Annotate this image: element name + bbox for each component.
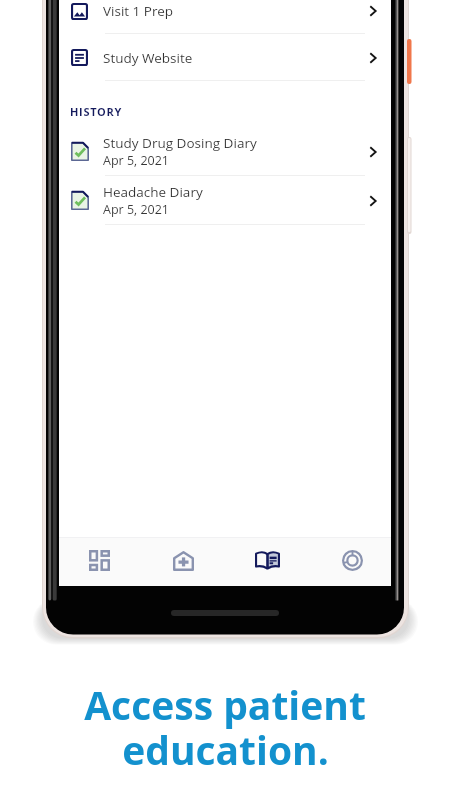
button[interactable]: Dashboard	[59, 536, 140, 585]
staticText: HISTORY	[70, 104, 123, 119]
staticText: Apr 5, 2021	[103, 201, 169, 218]
staticText: Study Drug Dosing Diary	[103, 134, 257, 152]
button[interactable]: Study Drug Dosing Diary	[59, 127, 391, 176]
button[interactable]: Visit 1 Prep	[59, 0, 391, 34]
staticText: education.	[122, 723, 329, 776]
button[interactable]: Progress	[310, 536, 394, 585]
staticText: Visit 1 Prep	[103, 2, 174, 20]
button[interactable]: Study Website	[59, 34, 391, 81]
button[interactable]: Clinic visits	[139, 536, 227, 585]
staticText: Access patient	[84, 678, 366, 731]
button[interactable]: Headache Diary	[59, 176, 391, 225]
staticText: Study Website	[103, 49, 193, 67]
staticText: Apr 5, 2021	[103, 152, 169, 169]
staticText: Headache Diary	[103, 183, 203, 201]
button[interactable]: Education	[227, 536, 307, 585]
